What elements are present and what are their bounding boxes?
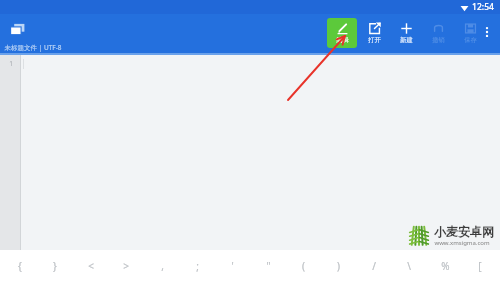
staticText: %	[441, 259, 450, 273]
staticText: \	[407, 259, 411, 273]
button[interactable]: {	[8, 250, 32, 282]
button[interactable]: >	[114, 250, 138, 282]
staticText: 打开	[368, 36, 381, 44]
button[interactable]: 新建	[390, 16, 422, 50]
button[interactable]: /	[362, 250, 386, 282]
staticText: 编辑	[336, 36, 349, 44]
button[interactable]: Tabs	[6, 19, 28, 41]
button[interactable]: <	[79, 250, 103, 282]
staticText: [	[478, 259, 482, 273]
button[interactable]: 打开	[358, 16, 390, 50]
staticText: 小麦安卓网	[434, 224, 494, 239]
staticText: 未标题文件 | UTF-8	[4, 43, 62, 52]
button[interactable]: (	[291, 250, 315, 282]
staticText: }	[53, 259, 57, 273]
button[interactable]: 保存	[454, 16, 486, 50]
staticText: ;	[196, 259, 199, 273]
button[interactable]: %	[433, 250, 457, 282]
button[interactable]: \	[397, 250, 421, 282]
button[interactable]: '	[220, 250, 244, 282]
staticText: ,	[161, 259, 164, 273]
button[interactable]: }	[43, 250, 67, 282]
staticText: {	[18, 259, 22, 273]
staticText: '	[231, 259, 234, 273]
staticText: 新建	[400, 36, 413, 44]
staticText: 12:54	[472, 1, 494, 13]
staticText: /	[372, 259, 376, 273]
staticText: <	[88, 259, 94, 273]
button[interactable]: 编辑	[326, 16, 358, 50]
button[interactable]: More options	[477, 22, 497, 42]
staticText: 保存	[464, 36, 477, 44]
button[interactable]: )	[326, 250, 350, 282]
staticText: )	[337, 259, 340, 273]
button[interactable]: ,	[150, 250, 174, 282]
button[interactable]: "	[256, 250, 280, 282]
staticText: www.xmsigma.com	[434, 239, 490, 247]
staticText: 1	[9, 59, 13, 68]
staticText: >	[123, 259, 129, 273]
staticText: (	[302, 259, 305, 273]
button[interactable]: 撤销	[422, 16, 454, 50]
button[interactable]: [	[468, 250, 492, 282]
staticText: "	[266, 259, 271, 273]
button[interactable]: ;	[185, 250, 209, 282]
staticText: 撤销	[432, 36, 445, 44]
